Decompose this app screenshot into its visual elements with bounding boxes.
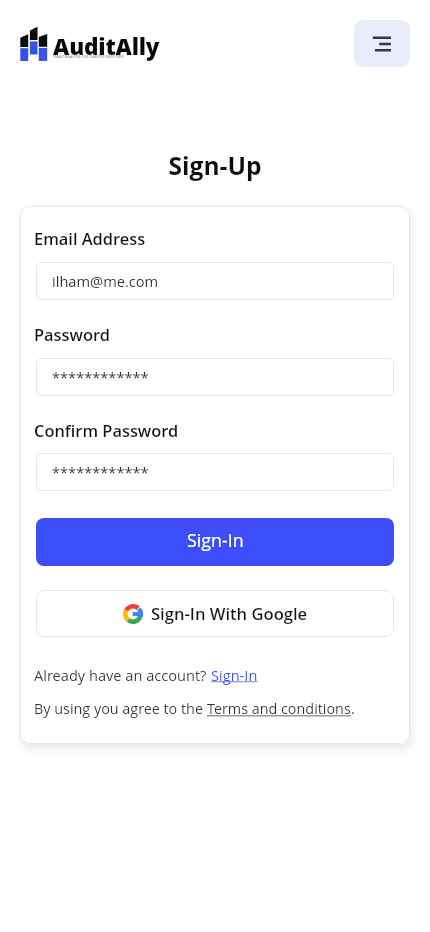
staticText: ilham@me.com [52, 271, 159, 291]
staticText: ************ [52, 367, 149, 387]
staticText: Email Address [34, 227, 146, 249]
button[interactable]: ************ [36, 358, 394, 396]
button[interactable]: ************ [36, 453, 394, 491]
staticText: Sign-In With Google [151, 602, 308, 625]
staticText: Password [34, 323, 110, 345]
button[interactable]: Sign-In [211, 665, 258, 685]
staticText: Sign-Up [0, 149, 430, 182]
staticText: Already have an account? [34, 665, 211, 685]
button[interactable]: Terms and conditions [207, 699, 351, 719]
staticText: SMART ANALYSIS FOR SMARTER INVESTMENTS [53, 54, 124, 58]
button[interactable]: Sign-In [36, 518, 394, 566]
button[interactable]: ilham@me.com [36, 262, 394, 300]
staticText: By using you agree to the [34, 699, 207, 719]
staticText: . [351, 699, 355, 719]
staticText: ************ [52, 462, 149, 482]
button[interactable]: AuditAlly home [20, 26, 162, 62]
button[interactable]: Open navigation menu [354, 20, 410, 67]
staticText: Confirm Password [34, 419, 179, 441]
staticText: Sign-In [187, 528, 244, 552]
button[interactable]: Sign-In With Google [36, 590, 394, 637]
staticText: AuditAlly [53, 31, 160, 62]
